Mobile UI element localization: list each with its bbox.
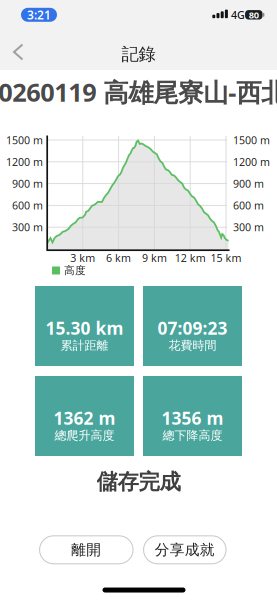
staticText: 600 m xyxy=(12,198,43,212)
staticText: 900 m xyxy=(12,176,43,191)
staticText: 離開 xyxy=(71,541,101,559)
staticText: 總下降高度 xyxy=(162,428,222,443)
staticText: 300 m xyxy=(233,220,264,234)
staticText: 1500 m xyxy=(6,133,43,147)
staticText: 高度 xyxy=(64,264,86,277)
button[interactable]: Back xyxy=(5,41,33,63)
staticText: 1200 m xyxy=(233,155,270,169)
staticText: 記錄 xyxy=(121,44,155,65)
staticText: 6 km xyxy=(106,251,131,265)
staticText: 1362 m xyxy=(53,406,115,429)
staticText: 80 xyxy=(249,9,259,21)
staticText: 總爬升高度 xyxy=(54,428,114,443)
staticText: 9 km xyxy=(142,251,167,265)
staticText: 12 km xyxy=(175,251,206,265)
staticText: 07:09:23 xyxy=(157,316,227,339)
staticText: 花費時間 xyxy=(168,338,216,353)
staticText: 3 km xyxy=(70,251,95,265)
staticText: 3:21 xyxy=(27,7,51,23)
staticText: 分享成就 xyxy=(155,541,215,559)
staticText: 15.30 km xyxy=(45,316,123,339)
staticText: 900 m xyxy=(233,176,264,191)
staticText: 600 m xyxy=(233,198,264,212)
button[interactable]: 離開 xyxy=(39,536,133,564)
staticText: 20260119 高雄尾寮山-西北峰 xyxy=(0,75,277,109)
staticText: 300 m xyxy=(12,220,43,234)
staticText: 4G xyxy=(231,8,245,22)
staticText: 1200 m xyxy=(6,155,43,169)
staticText: 1356 m xyxy=(161,406,223,429)
staticText: 累計距離 xyxy=(60,338,108,353)
staticText: 1500 m xyxy=(233,133,270,147)
staticText: 15 km xyxy=(210,251,241,265)
button[interactable]: 分享成就 xyxy=(144,536,226,564)
staticText: 儲存完成 xyxy=(96,469,180,495)
